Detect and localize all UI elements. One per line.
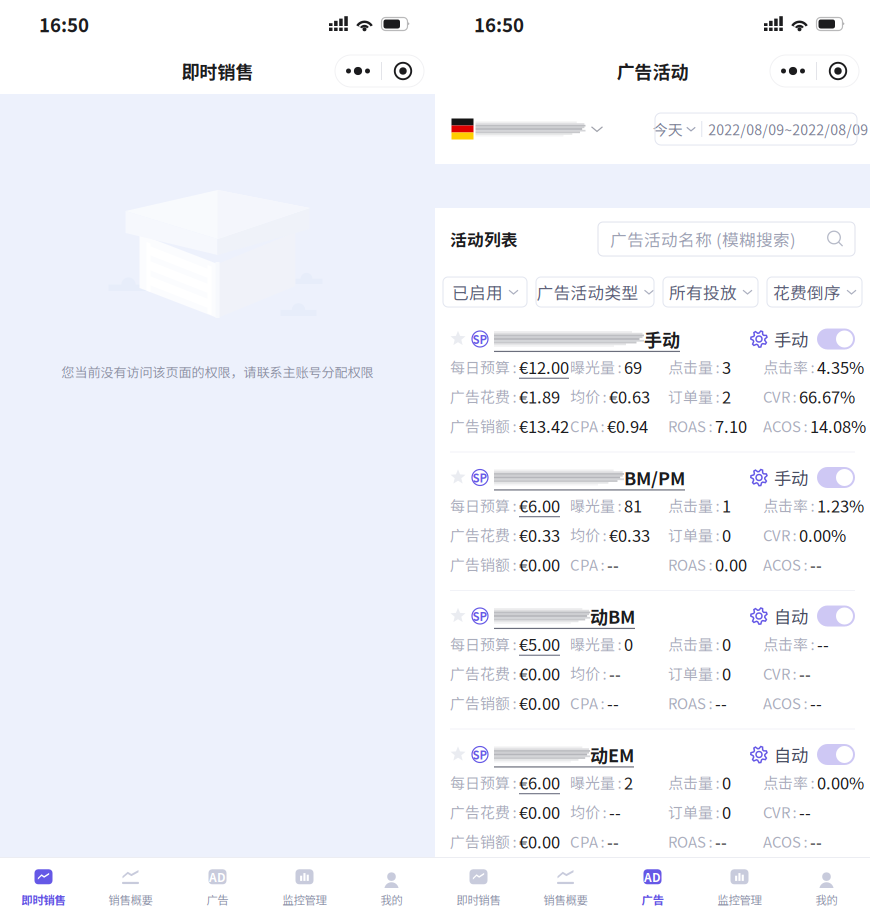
staticText: 14.08% bbox=[810, 414, 866, 438]
button[interactable]: 我的 bbox=[348, 858, 435, 913]
staticText: : bbox=[715, 385, 719, 407]
staticText: ROAS bbox=[668, 692, 706, 713]
staticText: 广告活动 bbox=[616, 58, 688, 84]
button[interactable]: 收藏 bbox=[450, 607, 466, 624]
staticText: 广告活动类型 bbox=[536, 280, 638, 304]
staticText: €0.33 bbox=[519, 523, 560, 547]
staticText: : bbox=[617, 356, 621, 377]
staticText: 广告花费 bbox=[450, 801, 510, 822]
staticText: 自动 bbox=[774, 742, 808, 767]
staticText: : bbox=[512, 524, 516, 545]
button[interactable]: 动BM bbox=[488, 603, 635, 629]
staticText: 0.00% bbox=[817, 770, 864, 794]
staticText: : bbox=[512, 662, 516, 684]
staticText: : bbox=[792, 385, 796, 407]
button[interactable]: 今天 bbox=[655, 113, 857, 145]
staticText: CPA bbox=[570, 553, 598, 575]
staticText: : bbox=[512, 830, 516, 852]
button[interactable]: BM/PM bbox=[488, 464, 685, 491]
button[interactable]: 我的 bbox=[783, 858, 870, 913]
button[interactable]: 收藏 bbox=[450, 330, 466, 347]
staticText: 每日预算 bbox=[450, 494, 510, 516]
button[interactable]: 自动 bbox=[750, 742, 855, 767]
button[interactable]: 广告活动名称 (模糊搜索) bbox=[598, 222, 855, 256]
staticText: 活动列表 bbox=[450, 227, 518, 251]
button[interactable]: 销售概要 bbox=[87, 858, 174, 913]
button[interactable]: 即时销售 bbox=[0, 858, 87, 913]
staticText: €0.94 bbox=[607, 414, 648, 438]
staticText: ROAS bbox=[668, 830, 706, 852]
button[interactable]: AD bbox=[174, 858, 261, 913]
staticText: : bbox=[512, 692, 516, 713]
staticText: 16:50 bbox=[474, 10, 524, 37]
button[interactable]: 监控管理 bbox=[696, 858, 783, 913]
staticText: 1.23% bbox=[817, 493, 864, 517]
staticText: 曝光量 bbox=[570, 494, 615, 516]
staticText: 手动 bbox=[774, 326, 808, 352]
button[interactable]: 已启用 bbox=[443, 277, 527, 307]
staticText: : bbox=[600, 553, 604, 575]
staticText: 81 bbox=[624, 493, 642, 517]
button[interactable]: 销售概要 bbox=[522, 858, 609, 913]
staticText: 点击量 bbox=[668, 494, 713, 516]
staticText: : bbox=[792, 524, 796, 545]
button[interactable]: 收藏 bbox=[450, 469, 466, 486]
button[interactable] bbox=[450, 117, 604, 141]
button[interactable]: 自动 bbox=[750, 603, 855, 629]
staticText: 2022/08/09~2022/08/09 bbox=[708, 119, 868, 139]
staticText: 订单量 bbox=[668, 662, 713, 684]
staticText: 点击率 bbox=[763, 771, 808, 793]
button[interactable]: AD bbox=[609, 858, 696, 913]
staticText: 2 bbox=[722, 384, 731, 408]
staticText: : bbox=[715, 771, 719, 793]
staticText: 已启用 bbox=[452, 280, 503, 304]
staticText: CVR bbox=[763, 385, 790, 407]
staticText: : bbox=[810, 494, 814, 516]
staticText: 2 bbox=[624, 770, 633, 794]
staticText: 所有投放 bbox=[669, 280, 737, 304]
staticText: : bbox=[803, 415, 807, 436]
staticText: €0.63 bbox=[609, 384, 650, 408]
staticText: BM/PM bbox=[624, 464, 685, 491]
button[interactable]: 所有投放 bbox=[663, 277, 758, 307]
button[interactable]: Close bbox=[382, 55, 424, 87]
button[interactable]: 花费倒序 bbox=[767, 277, 862, 307]
staticText: SP bbox=[472, 746, 487, 763]
staticText: ACOS bbox=[763, 692, 801, 713]
staticText: : bbox=[600, 415, 604, 436]
staticText: 4.35% bbox=[817, 355, 864, 379]
button[interactable]: More bbox=[335, 55, 381, 87]
staticText: 广告销额 bbox=[450, 830, 510, 852]
button[interactable]: 收藏 bbox=[450, 746, 466, 763]
staticText: : bbox=[810, 771, 814, 793]
staticText: 监控管理 bbox=[717, 891, 761, 908]
staticText: 我的 bbox=[380, 891, 402, 908]
staticText: 订单量 bbox=[668, 524, 713, 545]
staticText: : bbox=[810, 633, 814, 654]
button[interactable]: 动EM bbox=[488, 741, 634, 768]
staticText: 0.00% bbox=[799, 523, 846, 547]
staticText: -- bbox=[607, 691, 619, 715]
button[interactable]: 监控管理 bbox=[261, 858, 348, 913]
staticText: : bbox=[512, 356, 516, 377]
staticText: : bbox=[803, 830, 807, 852]
button[interactable]: Close bbox=[817, 55, 859, 87]
staticText: : bbox=[602, 662, 606, 684]
staticText: 每日预算 bbox=[450, 633, 510, 654]
button[interactable]: 手动 bbox=[750, 465, 855, 490]
staticText: 0 bbox=[722, 523, 731, 547]
staticText: 手动 bbox=[774, 465, 808, 490]
staticText: 广告销额 bbox=[450, 692, 510, 713]
staticText: 您当前没有访问该页面的权限，请联系主账号分配权限 bbox=[61, 362, 373, 381]
staticText: €0.00 bbox=[519, 691, 560, 715]
button[interactable]: 手动 bbox=[750, 326, 855, 352]
button[interactable]: 手动 bbox=[488, 326, 680, 352]
button[interactable]: More bbox=[770, 55, 816, 87]
staticText: 均价 bbox=[570, 801, 600, 822]
button[interactable]: 即时销售 bbox=[435, 858, 522, 913]
staticText: €0.33 bbox=[609, 523, 650, 547]
staticText: 动BM bbox=[590, 603, 635, 629]
staticText: 每日预算 bbox=[450, 771, 510, 793]
button[interactable]: 广告活动类型 bbox=[536, 277, 654, 307]
staticText: 曝光量 bbox=[570, 633, 615, 654]
